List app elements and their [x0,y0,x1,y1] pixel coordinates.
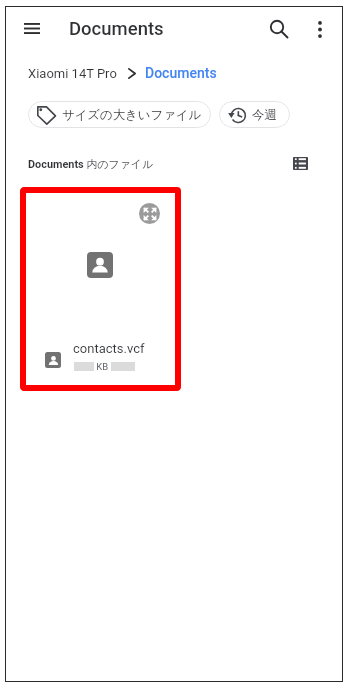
staticText: Documents [69,18,164,40]
button[interactable]: Switch to list view [285,148,315,178]
staticText: KB [94,361,111,372]
button[interactable]: 今週 [219,101,290,128]
button[interactable]: Search [261,11,297,47]
button[interactable]: More options [304,13,336,45]
staticText: contacts.vcf [73,341,145,356]
button[interactable]: Xiaomi 14T Pro [25,63,120,84]
button[interactable]: Expand preview [26,193,175,385]
button[interactable]: サイズの大きいファイル [28,101,211,128]
staticText: 今週 [252,107,277,123]
button[interactable]: Documents [142,62,220,84]
staticText: サイズの大きいファイル [62,107,202,123]
button[interactable]: Expand preview [139,203,160,224]
staticText: Documents 内のファイル [28,158,154,172]
button[interactable]: Navigation menu [16,12,48,44]
